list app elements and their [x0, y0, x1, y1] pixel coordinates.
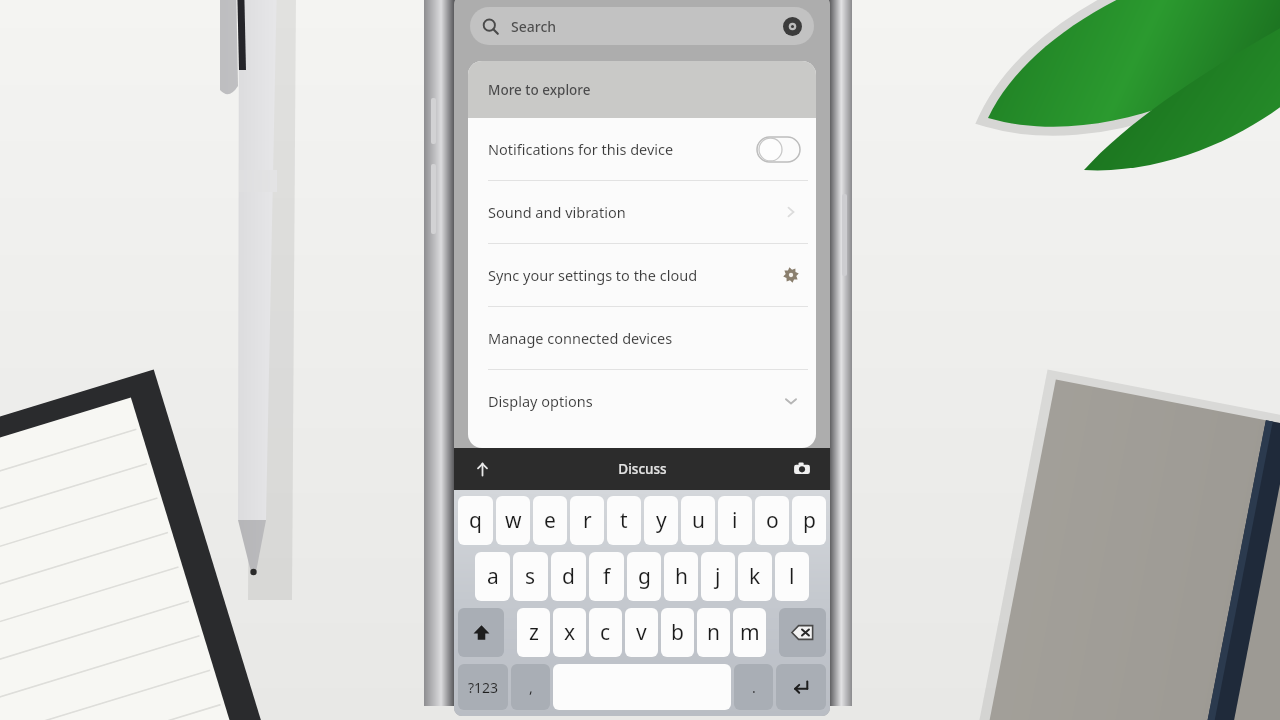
button[interactable]: Toggle notifications	[757, 137, 800, 162]
staticText: y	[656, 506, 667, 535]
button[interactable]: o	[755, 496, 789, 545]
button[interactable]: Shift	[458, 608, 504, 657]
staticText: h	[675, 562, 688, 591]
button[interactable]: k	[738, 552, 772, 601]
staticText: v	[636, 618, 647, 647]
staticText: x	[564, 618, 576, 647]
button[interactable]: r	[570, 496, 604, 545]
staticText: Search	[511, 17, 557, 36]
button[interactable]: u	[681, 496, 715, 545]
staticText: z	[529, 618, 539, 647]
staticText: w	[505, 506, 522, 535]
button[interactable]: e	[533, 496, 567, 545]
button[interactable]: Attach	[454, 448, 510, 490]
button[interactable]: Sound and vibration	[468, 181, 816, 243]
staticText: u	[692, 506, 705, 535]
button[interactable]: Sync your settings to the cloud	[468, 244, 816, 306]
staticText: l	[789, 562, 795, 591]
button[interactable]: Expand	[782, 392, 800, 410]
staticText: s	[525, 562, 536, 591]
button[interactable]: Search	[470, 7, 814, 45]
staticText: .	[752, 678, 756, 697]
button[interactable]: l	[775, 552, 809, 601]
staticText: k	[749, 562, 761, 591]
staticText: a	[487, 562, 499, 591]
button[interactable]: Notifications for this device	[468, 118, 816, 180]
staticText: Discuss	[618, 460, 667, 478]
button[interactable]: j	[701, 552, 735, 601]
staticText: m	[740, 618, 760, 647]
button[interactable]: t	[607, 496, 641, 545]
button[interactable]: x	[553, 608, 586, 657]
button[interactable]: Discuss	[510, 448, 774, 490]
button[interactable]: p	[792, 496, 826, 545]
button[interactable]: Settings	[782, 266, 800, 284]
button[interactable]: z	[517, 608, 550, 657]
button[interactable]: ?123	[458, 664, 508, 710]
staticText: o	[766, 506, 779, 535]
staticText: e	[544, 506, 556, 535]
button[interactable]: Display options	[468, 370, 816, 432]
staticText: Manage connected devices	[488, 328, 673, 348]
staticText: r	[583, 506, 592, 535]
button[interactable]: Expand	[782, 203, 800, 221]
button[interactable]: s	[513, 552, 548, 601]
button[interactable]: Backspace	[779, 608, 826, 657]
button[interactable]: m	[733, 608, 766, 657]
button[interactable]: .	[734, 664, 773, 710]
staticText: b	[671, 618, 684, 647]
button[interactable]: ,	[511, 664, 550, 710]
button[interactable]: d	[551, 552, 586, 601]
button[interactable]: h	[664, 552, 698, 601]
button[interactable]: Camera	[774, 448, 830, 490]
button[interactable]: Manage connected devices	[468, 307, 816, 369]
staticText: c	[600, 618, 611, 647]
staticText: n	[707, 618, 720, 647]
button[interactable]: v	[625, 608, 658, 657]
button[interactable]: w	[496, 496, 530, 545]
staticText: More to explore	[488, 81, 591, 99]
staticText: ?123	[468, 678, 499, 697]
button[interactable]: f	[589, 552, 624, 601]
button[interactable]: Enter	[776, 664, 826, 710]
button[interactable]: i	[718, 496, 752, 545]
staticText: ,	[529, 678, 533, 697]
staticText: t	[620, 506, 628, 535]
button[interactable]: a	[475, 552, 510, 601]
staticText: Sync your settings to the cloud	[488, 265, 698, 285]
staticText: Display options	[488, 391, 593, 411]
button[interactable]: q	[458, 496, 493, 545]
staticText: Sound and vibration	[488, 202, 626, 222]
staticText: p	[803, 506, 816, 535]
staticText: Notifications for this device	[488, 139, 674, 159]
button[interactable]: Space	[553, 664, 731, 710]
staticText: q	[469, 506, 482, 535]
staticText: i	[732, 506, 738, 535]
button[interactable]: b	[661, 608, 694, 657]
button[interactable]: c	[589, 608, 622, 657]
staticText: g	[638, 562, 651, 591]
staticText: f	[603, 562, 611, 591]
button[interactable]: Voice search	[783, 17, 802, 36]
button[interactable]: n	[697, 608, 730, 657]
staticText: j	[715, 562, 721, 591]
button[interactable]: g	[627, 552, 661, 601]
staticText: d	[562, 562, 575, 591]
button[interactable]: y	[644, 496, 678, 545]
